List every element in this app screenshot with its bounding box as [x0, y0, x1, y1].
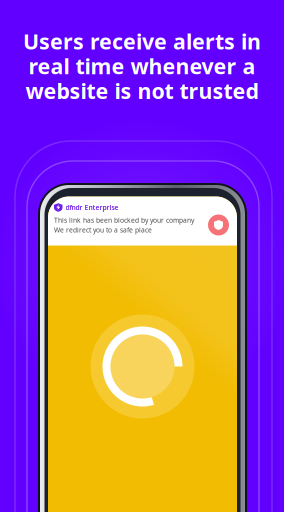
- button[interactable]: dfndr Enterprise: [48, 196, 237, 245]
- staticText: This link has been blocked by your compa…: [54, 216, 194, 224]
- staticText: website is not trusted: [25, 77, 258, 105]
- staticText: real time whenever a: [28, 52, 255, 80]
- staticText: dfndr Enterprise: [65, 203, 118, 212]
- staticText: Users receive alerts in: [23, 27, 261, 55]
- staticText: We redirect you to a safe place: [54, 225, 152, 234]
